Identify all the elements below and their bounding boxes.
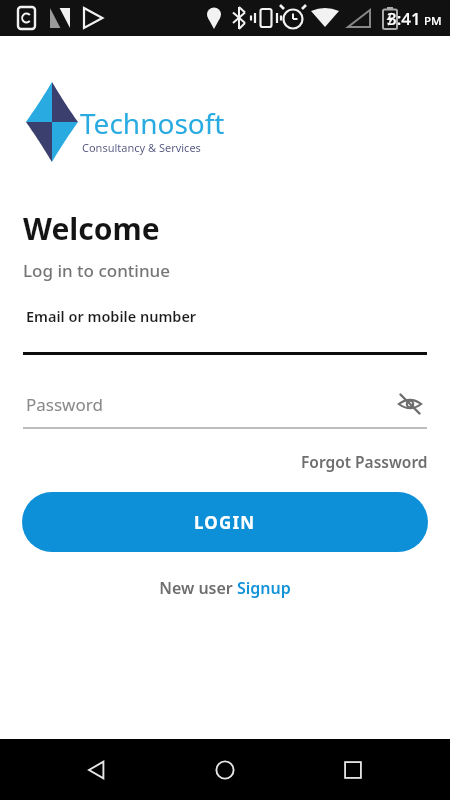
staticText: Welcome [23, 208, 160, 249]
staticText: Technosoft [80, 104, 225, 142]
staticText: PM [424, 13, 442, 29]
staticText: Log in to continue [23, 259, 170, 282]
staticText: Forgot Password [301, 451, 428, 472]
button[interactable]: Home [201, 746, 249, 794]
button[interactable]: Back [73, 746, 121, 794]
button[interactable]: Password [0, 387, 450, 429]
staticText: Password [26, 393, 393, 416]
staticText: Email or mobile number [26, 306, 197, 326]
staticText: Consultancy & Services [82, 140, 201, 155]
staticText: LOGIN [194, 511, 256, 534]
button[interactable]: Recent apps [329, 746, 377, 794]
button[interactable]: Forgot Password [279, 449, 450, 474]
button[interactable]: Show password [393, 387, 427, 421]
staticText: New user Signup [159, 577, 291, 599]
button[interactable]: Email or mobile number [0, 306, 450, 355]
staticText: 3:41 [387, 7, 421, 30]
button[interactable]: LOGIN [22, 492, 428, 552]
button[interactable]: New user Signup [143, 574, 307, 602]
